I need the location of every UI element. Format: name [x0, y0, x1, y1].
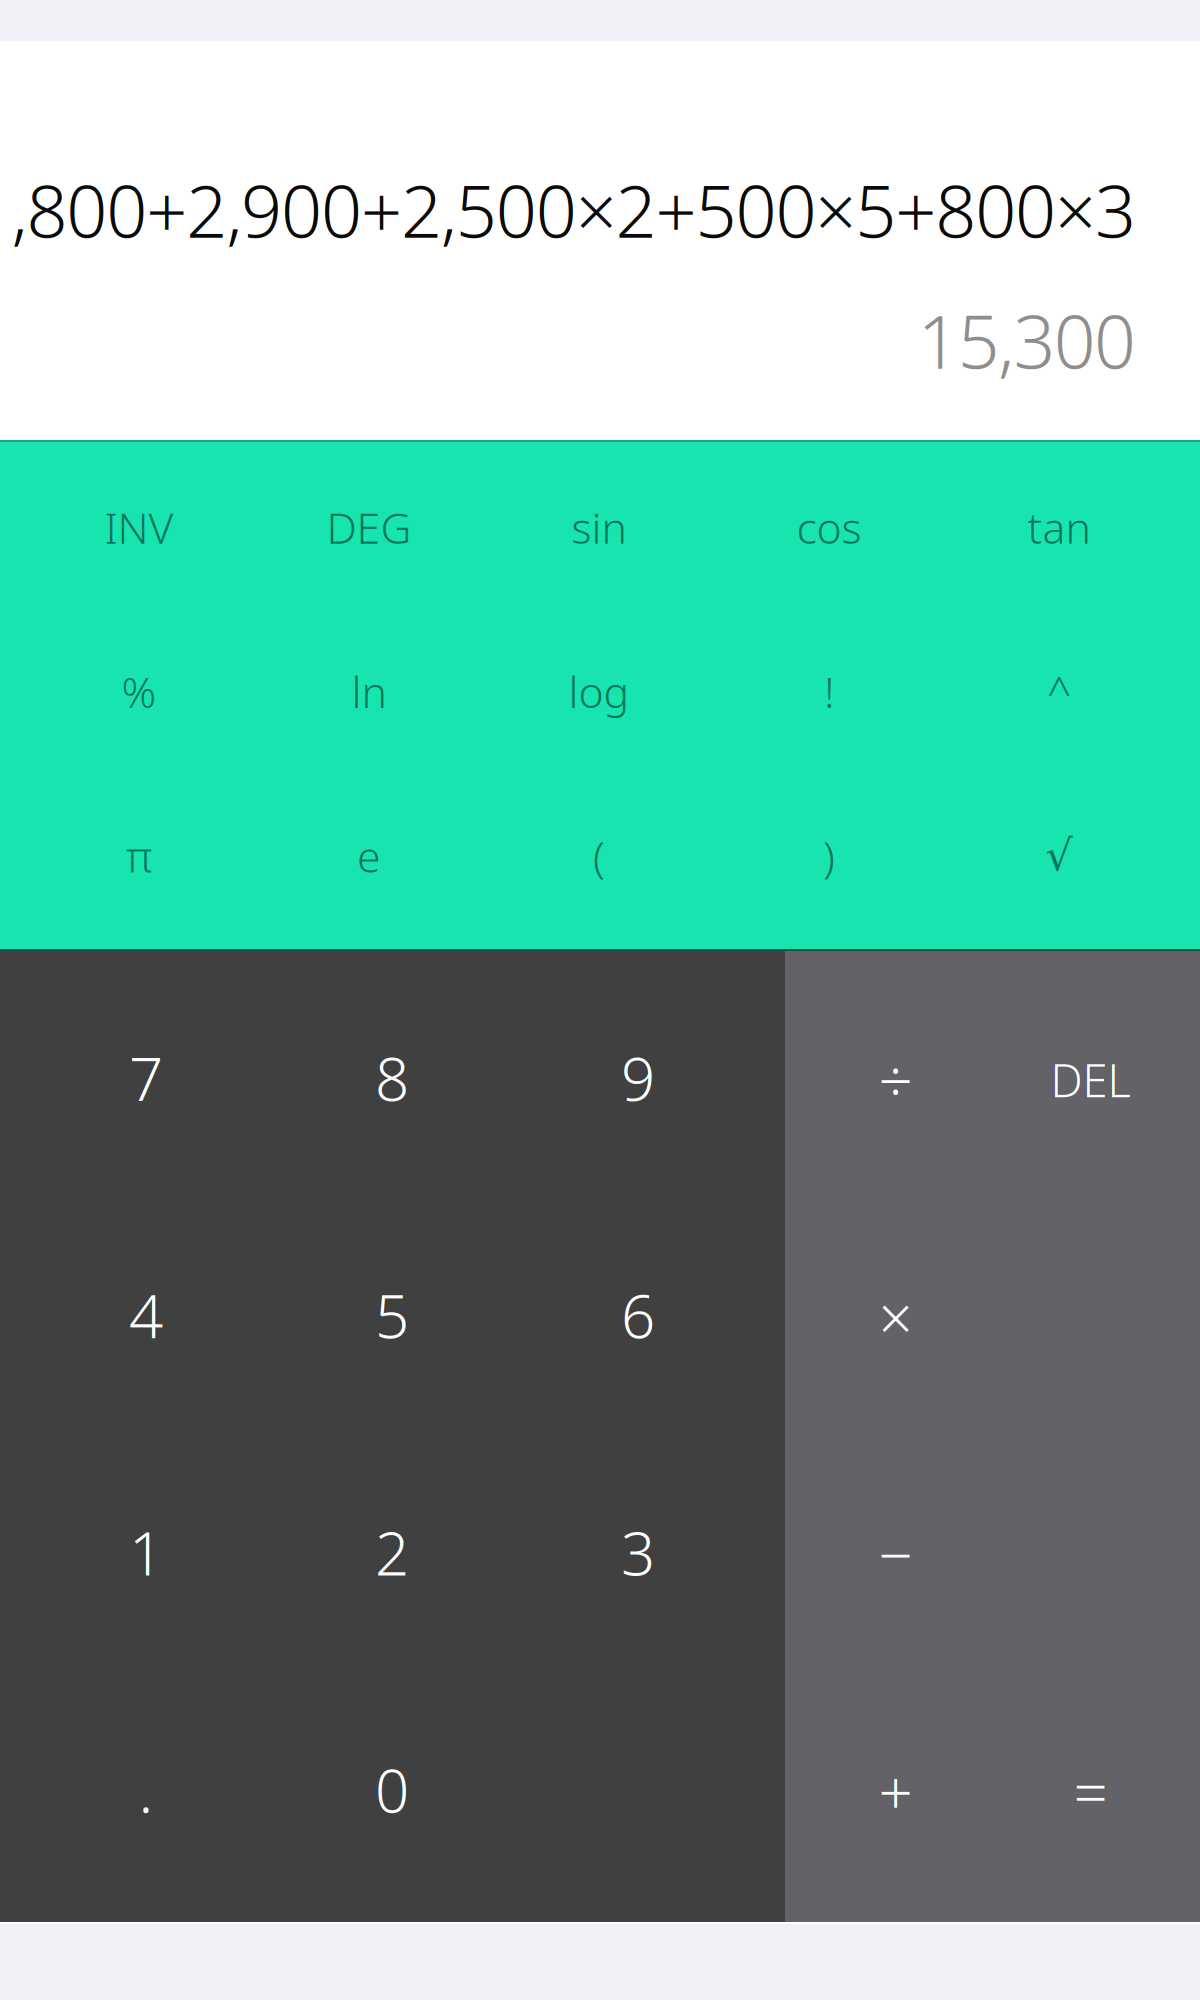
staticText: cos — [796, 499, 861, 555]
button[interactable]: 4 — [23, 1196, 269, 1433]
button[interactable]: Multiply — [798, 1198, 993, 1435]
staticText: e — [357, 827, 381, 884]
staticText: + — [878, 1751, 912, 1831]
button[interactable]: cos — [714, 445, 944, 609]
button[interactable]: 1 — [23, 1433, 269, 1671]
staticText: log — [568, 663, 629, 720]
button[interactable]: 3 — [515, 1433, 761, 1671]
button[interactable]: Degrees — [254, 445, 484, 609]
staticText: 5 — [375, 1275, 409, 1355]
staticText: DEG — [326, 499, 411, 555]
staticText: − — [878, 1514, 912, 1594]
button[interactable]: tan — [944, 445, 1174, 609]
button[interactable]: Equals — [993, 1673, 1188, 1910]
staticText: DEL — [1050, 1049, 1130, 1110]
button[interactable]: Divide — [798, 961, 993, 1198]
button[interactable]: Plus — [798, 1673, 993, 1910]
button[interactable]: 2 — [269, 1433, 515, 1671]
button[interactable]: Percent — [24, 609, 254, 774]
staticText: × — [878, 1277, 912, 1357]
button[interactable]: 0 — [269, 1671, 515, 1908]
staticText: . — [138, 1749, 153, 1829]
staticText: INV — [104, 499, 173, 555]
button[interactable]: Decimal point — [23, 1671, 269, 1908]
staticText: 4 — [129, 1275, 163, 1355]
staticText: ^ — [1047, 663, 1071, 720]
button[interactable]: Natural log — [254, 609, 484, 774]
staticText: tan — [1027, 499, 1090, 555]
staticText: √ — [1045, 832, 1072, 880]
staticText: = — [1073, 1751, 1107, 1831]
staticText: ln — [351, 663, 386, 720]
button[interactable]: Power — [944, 609, 1174, 774]
staticText: 6 — [621, 1275, 655, 1355]
button[interactable]: Factorial — [714, 609, 944, 774]
staticText: ,800+2,900+2,500×2+500×5+800×3 — [11, 162, 1136, 258]
staticText: 2 — [375, 1512, 409, 1592]
staticText: 9 — [621, 1038, 655, 1117]
staticText: ÷ — [878, 1040, 912, 1119]
staticText: sin — [571, 499, 626, 555]
staticText: ( — [593, 827, 605, 884]
button[interactable]: Pi — [24, 774, 254, 938]
button[interactable]: 6 — [515, 1196, 761, 1433]
button[interactable]: 9 — [515, 959, 761, 1196]
button[interactable]: Minus — [798, 1435, 993, 1673]
staticText: 15,300 — [917, 292, 1136, 389]
button[interactable]: 7 — [23, 959, 269, 1196]
staticText: 7 — [129, 1038, 163, 1117]
button[interactable]: Euler's number — [254, 774, 484, 938]
staticText: ) — [823, 827, 835, 884]
staticText: 1 — [129, 1512, 163, 1592]
staticText: 0 — [375, 1749, 409, 1829]
button[interactable]: Open bracket — [484, 774, 714, 938]
button[interactable]: Square root — [944, 774, 1174, 938]
button[interactable]: Delete — [993, 961, 1188, 1198]
button[interactable]: 8 — [269, 959, 515, 1196]
staticText: π — [126, 827, 152, 884]
staticText: 3 — [621, 1512, 655, 1592]
staticText: 8 — [375, 1038, 409, 1117]
button[interactable]: Inverse — [24, 445, 254, 609]
button[interactable]: log — [484, 609, 714, 774]
staticText: ! — [824, 663, 834, 720]
button[interactable]: sin — [484, 445, 714, 609]
staticText: % — [121, 663, 156, 720]
button[interactable]: Close bracket — [714, 774, 944, 938]
button[interactable]: 5 — [269, 1196, 515, 1433]
